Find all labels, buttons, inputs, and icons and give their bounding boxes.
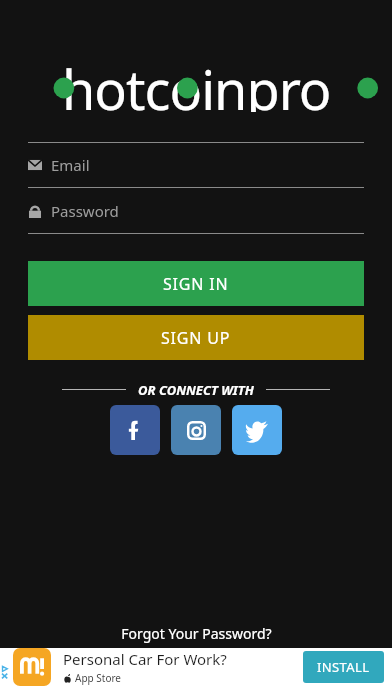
button[interactable]: SIGN UP xyxy=(28,315,364,360)
button[interactable]: Password xyxy=(28,188,364,233)
button[interactable]: Instagram xyxy=(171,405,221,455)
button[interactable]: Forgot Your Password? xyxy=(117,620,276,647)
staticText: Password xyxy=(51,201,119,221)
staticText: Personal Car For Work? xyxy=(63,649,227,669)
button[interactable]: SIGN IN xyxy=(28,261,364,306)
staticText: hotcoinpro xyxy=(62,52,331,112)
staticText: Email xyxy=(51,155,90,175)
staticText: SIGN UP xyxy=(161,327,231,349)
button[interactable]: INSTALL xyxy=(303,651,384,683)
staticText: Forgot Your Password? xyxy=(121,624,272,643)
button[interactable]: Email xyxy=(28,143,364,187)
staticText: OR CONNECT WITH xyxy=(138,381,254,397)
button[interactable]: Twitter xyxy=(232,405,282,455)
button[interactable]: Facebook xyxy=(110,405,160,455)
staticText: App Store xyxy=(75,671,122,685)
staticText: SIGN IN xyxy=(163,273,229,295)
staticText: INSTALL xyxy=(317,658,370,676)
